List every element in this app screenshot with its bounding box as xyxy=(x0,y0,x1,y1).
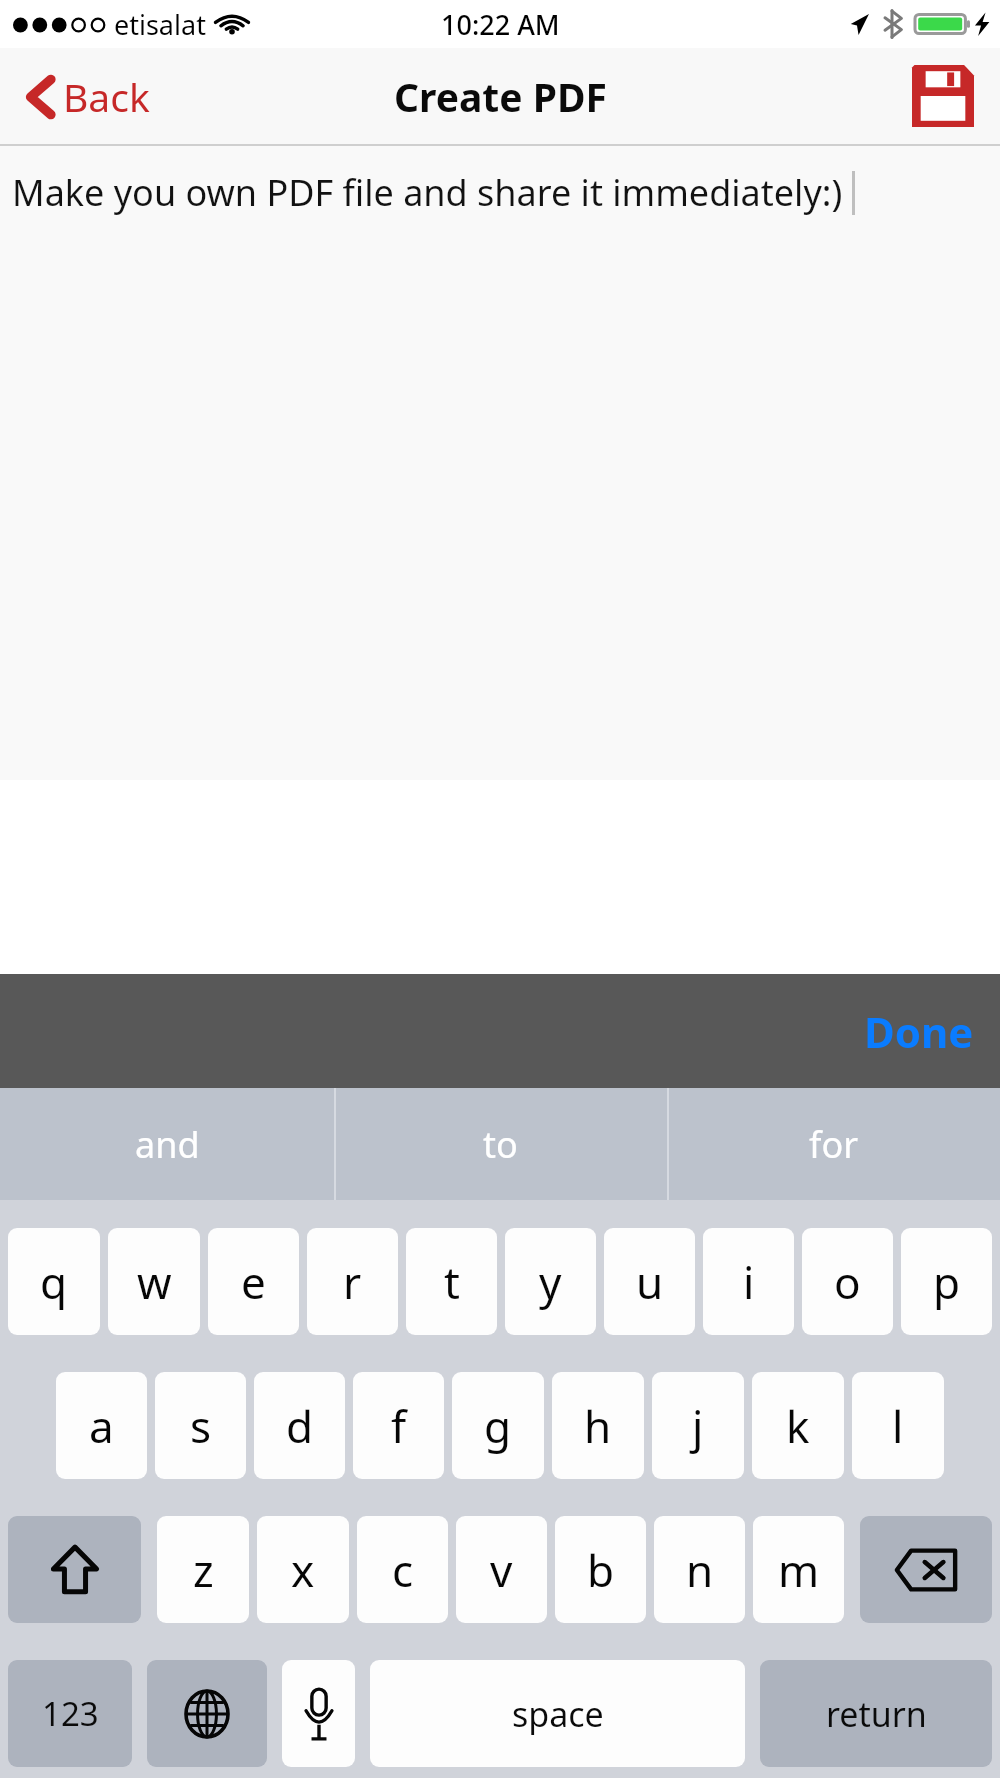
staticText: 123 xyxy=(42,1691,99,1736)
button[interactable]: Make you own PDF file and share it immed… xyxy=(0,146,1000,780)
staticText: i xyxy=(743,1252,755,1312)
staticText: b xyxy=(587,1540,615,1600)
button[interactable]: g xyxy=(452,1372,544,1479)
button[interactable]: and xyxy=(0,1088,334,1200)
button[interactable]: f xyxy=(353,1372,444,1479)
staticText: for xyxy=(809,1120,859,1169)
button[interactable]: o xyxy=(802,1228,893,1335)
button[interactable]: y xyxy=(505,1228,596,1335)
button[interactable]: e xyxy=(208,1228,299,1335)
button[interactable]: x xyxy=(257,1516,349,1623)
staticText: k xyxy=(786,1396,810,1456)
staticText: return xyxy=(826,1691,927,1737)
button[interactable]: Backspace xyxy=(860,1516,992,1623)
button[interactable]: 123 xyxy=(8,1660,132,1767)
button[interactable]: for xyxy=(667,1088,1000,1200)
staticText: v xyxy=(490,1540,513,1600)
button[interactable]: w xyxy=(108,1228,200,1335)
button[interactable]: d xyxy=(254,1372,345,1479)
button[interactable]: Shift xyxy=(8,1516,141,1623)
staticText: and xyxy=(135,1120,200,1169)
staticText: y xyxy=(539,1252,562,1312)
button[interactable]: Done xyxy=(838,987,1000,1076)
staticText: Create PDF xyxy=(394,70,607,123)
button[interactable]: u xyxy=(604,1228,695,1335)
button[interactable]: Dictate xyxy=(282,1660,355,1767)
staticText: h xyxy=(584,1396,612,1456)
staticText: Back xyxy=(63,70,150,123)
button[interactable]: k xyxy=(752,1372,844,1479)
staticText: n xyxy=(686,1540,714,1600)
staticText: m xyxy=(778,1540,820,1600)
button[interactable]: j xyxy=(652,1372,744,1479)
button[interactable]: Save xyxy=(886,51,1000,141)
staticText: f xyxy=(391,1396,407,1456)
button[interactable]: h xyxy=(552,1372,644,1479)
staticText: Make you own PDF file and share it immed… xyxy=(12,168,843,217)
staticText: u xyxy=(636,1252,664,1312)
button[interactable]: Back xyxy=(0,56,170,137)
staticText: d xyxy=(286,1396,314,1456)
staticText: z xyxy=(193,1540,214,1600)
staticText: q xyxy=(40,1252,68,1312)
staticText: x xyxy=(291,1540,315,1600)
button[interactable]: b xyxy=(555,1516,646,1623)
button[interactable]: c xyxy=(357,1516,448,1623)
staticText: g xyxy=(484,1396,512,1456)
staticText: j xyxy=(692,1396,704,1456)
button[interactable]: space xyxy=(370,1660,745,1767)
button[interactable]: t xyxy=(406,1228,497,1335)
staticText: etisalat xyxy=(114,6,206,43)
staticText: t xyxy=(444,1252,460,1312)
staticText: a xyxy=(89,1396,114,1456)
button[interactable]: z xyxy=(157,1516,249,1623)
button[interactable]: r xyxy=(307,1228,398,1335)
button[interactable]: n xyxy=(654,1516,745,1623)
button[interactable]: a xyxy=(56,1372,147,1479)
button[interactable]: to xyxy=(334,1088,667,1200)
button[interactable]: l xyxy=(852,1372,944,1479)
staticText: o xyxy=(834,1252,861,1312)
staticText: to xyxy=(483,1120,518,1169)
button[interactable]: Switch keyboard language xyxy=(147,1660,267,1767)
button[interactable]: q xyxy=(8,1228,100,1335)
staticText: e xyxy=(241,1252,266,1312)
button[interactable]: m xyxy=(753,1516,844,1623)
staticText: w xyxy=(137,1252,172,1312)
button[interactable]: v xyxy=(456,1516,547,1623)
staticText: p xyxy=(933,1252,961,1312)
button[interactable]: s xyxy=(155,1372,246,1479)
button[interactable]: i xyxy=(703,1228,794,1335)
staticText: l xyxy=(892,1396,904,1456)
staticText: Done xyxy=(864,1003,974,1060)
staticText: c xyxy=(392,1540,414,1600)
staticText: r xyxy=(343,1252,362,1312)
staticText: 10:22 AM xyxy=(441,6,560,43)
staticText: space xyxy=(512,1691,604,1737)
button[interactable]: return xyxy=(760,1660,992,1767)
staticText: s xyxy=(190,1396,212,1456)
button[interactable]: p xyxy=(901,1228,992,1335)
